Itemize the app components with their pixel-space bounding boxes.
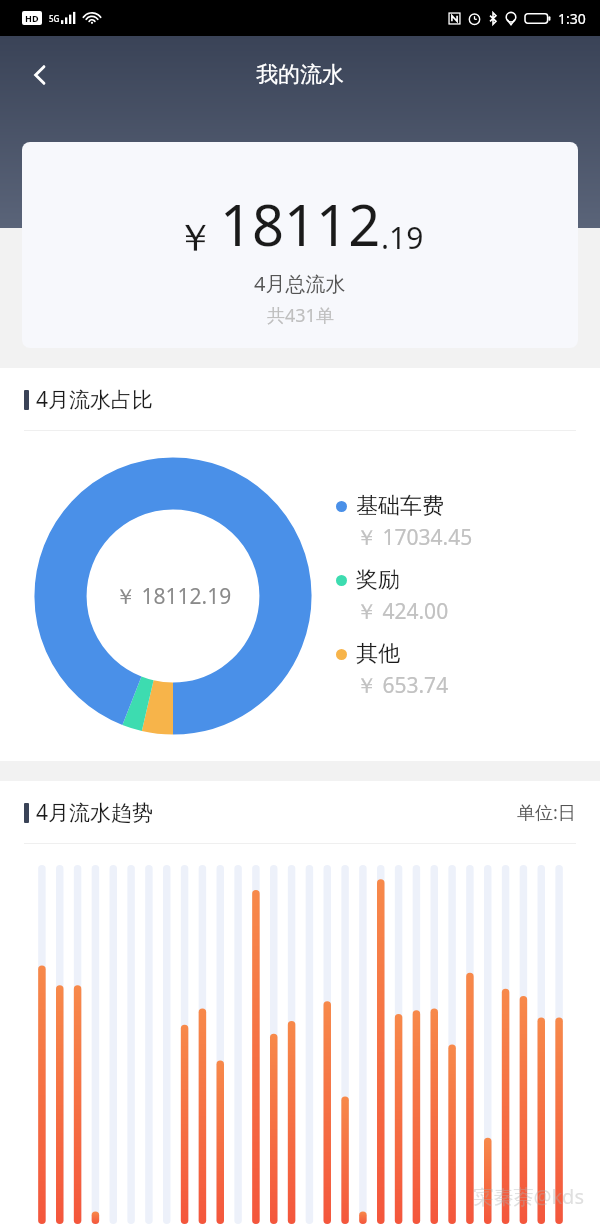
- staticText: 共431单: [267, 303, 334, 328]
- button[interactable]: 其他: [336, 640, 449, 700]
- button[interactable]: 基础车费: [336, 492, 473, 552]
- staticText: 其他: [356, 640, 400, 668]
- staticText: ￥: [176, 214, 214, 262]
- staticText: HD: [25, 12, 39, 24]
- staticText: 单位:日: [517, 800, 576, 825]
- staticText: 4月总流水: [254, 270, 346, 297]
- staticText: 18112: [220, 186, 381, 262]
- staticText: 寀秦萘@kds: [473, 1183, 584, 1210]
- staticText: ￥ 17034.45: [356, 523, 473, 552]
- button[interactable]: 奖励: [336, 566, 449, 626]
- staticText: .19: [381, 217, 424, 258]
- staticText: 基础车费: [356, 492, 444, 520]
- staticText: 5G: [49, 13, 60, 24]
- staticText: ￥ 653.74: [356, 671, 449, 700]
- button[interactable]: ￥: [22, 142, 578, 348]
- staticText: 奖励: [356, 566, 400, 594]
- staticText: 4月流水趋势: [36, 798, 154, 827]
- staticText: 我的流水: [256, 61, 344, 89]
- staticText: ￥ 424.00: [356, 597, 449, 626]
- button[interactable]: Back: [16, 51, 64, 99]
- staticText: 1:30: [558, 9, 586, 28]
- staticText: 4月流水占比: [36, 385, 154, 414]
- staticText: ￥ 18112.19: [115, 582, 232, 611]
